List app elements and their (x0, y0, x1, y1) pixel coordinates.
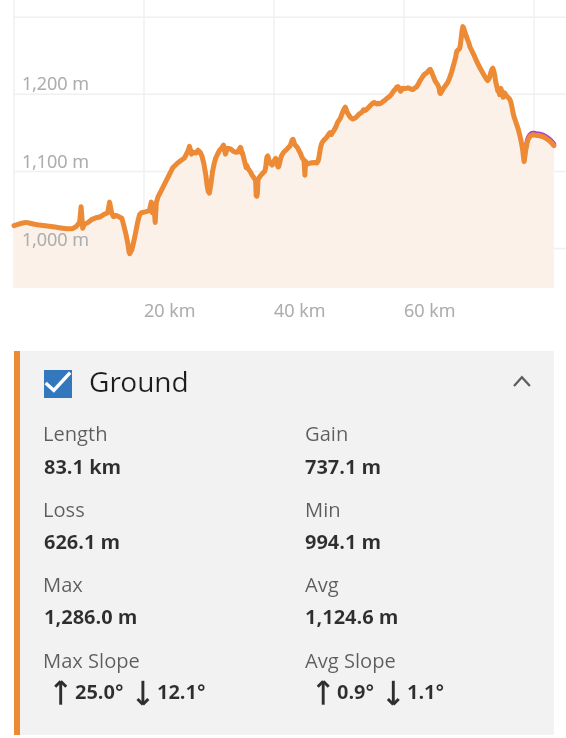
staticText: 1,286.0 m (44, 603, 138, 630)
staticText: 83.1 km (44, 453, 122, 480)
button[interactable]: Collapse section (500, 360, 544, 404)
staticText: 40 km (274, 298, 326, 323)
staticText: Length (43, 420, 108, 447)
staticText: Min (305, 496, 341, 523)
staticText: 1,100 m (22, 149, 89, 174)
staticText: Loss (43, 496, 85, 523)
staticText: 1.1° (407, 678, 445, 705)
staticText: 994.1 m (305, 528, 382, 555)
staticText: Max Slope (43, 647, 140, 674)
staticText: Ground (89, 362, 189, 400)
staticText: 25.0° (75, 678, 124, 705)
staticText: 626.1 m (44, 528, 121, 555)
staticText: Gain (305, 420, 349, 447)
staticText: 60 km (404, 298, 456, 323)
staticText: 0.9° (337, 678, 375, 705)
staticText: Avg Slope (305, 647, 396, 674)
staticText: 1,200 m (22, 71, 89, 96)
staticText: 12.1° (157, 678, 206, 705)
button[interactable]: Ground layer visible (44, 370, 72, 398)
staticText: Avg (305, 571, 339, 598)
staticText: 1,000 m (22, 227, 89, 252)
staticText: 737.1 m (305, 453, 382, 480)
staticText: Max (43, 571, 83, 598)
staticText: 1,124.6 m (305, 603, 399, 630)
button[interactable]: Ground layer visible (19, 351, 497, 419)
staticText: 20 km (144, 298, 196, 323)
